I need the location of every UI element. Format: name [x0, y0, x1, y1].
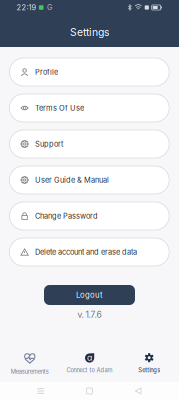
staticText: v. 1.7.6 [77, 309, 101, 320]
staticText: Terms Of Use [35, 103, 84, 112]
staticText: G [47, 3, 52, 12]
button[interactable]: Change Password [9, 202, 169, 230]
button[interactable]: Delete account and erase data [9, 238, 169, 266]
staticText: Settings [70, 26, 109, 38]
staticText: Connect to Adam [66, 367, 112, 374]
staticText: Logout [76, 290, 103, 300]
button[interactable]: Home [81, 384, 97, 398]
staticText: 22:19 [16, 3, 36, 12]
staticText: α [87, 353, 92, 363]
button[interactable]: Back [130, 384, 146, 398]
button[interactable]: Recent apps [33, 384, 49, 398]
button[interactable]: Profile [9, 58, 169, 86]
button[interactable]: Measurements [0, 351, 60, 382]
staticText: Profile [35, 67, 58, 76]
button[interactable]: Settings [119, 351, 179, 382]
button[interactable]: Support [9, 130, 169, 158]
button[interactable]: User Guide & Manual [9, 166, 169, 194]
button[interactable]: Logout [44, 285, 135, 305]
staticText: Support [35, 139, 63, 148]
staticText: User Guide & Manual [35, 175, 109, 184]
staticText: Delete account and erase data [35, 247, 137, 256]
staticText: Change Password [35, 211, 98, 220]
staticText: Settings [138, 367, 160, 373]
button[interactable]: α [60, 351, 119, 382]
staticText: Measurements [11, 368, 49, 375]
button[interactable]: Terms Of Use [9, 94, 169, 122]
